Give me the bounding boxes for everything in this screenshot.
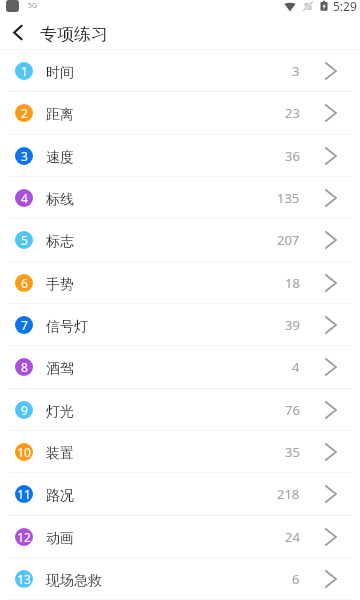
staticText: 6 xyxy=(21,275,28,291)
staticText: 装置 xyxy=(46,445,74,463)
staticText: 2 xyxy=(21,105,28,121)
staticText: 7 xyxy=(21,317,28,333)
staticText: 动画 xyxy=(46,530,74,548)
button[interactable]: Back xyxy=(2,22,32,49)
staticText: 5 xyxy=(21,232,28,248)
staticText: 207 xyxy=(277,231,300,249)
button[interactable]: 12 xyxy=(0,515,360,557)
staticText: 现场急救 xyxy=(46,572,102,590)
staticText: 13 xyxy=(17,571,31,587)
staticText: 35 xyxy=(285,443,300,461)
button[interactable]: 2 xyxy=(0,91,360,133)
staticText: 10 xyxy=(17,444,31,460)
staticText: 速度 xyxy=(46,149,74,167)
button[interactable]: 6 xyxy=(0,261,360,303)
staticText: 5:29 xyxy=(333,0,357,14)
button[interactable]: 8 xyxy=(0,345,360,387)
staticText: 酒驾 xyxy=(46,360,74,378)
staticText: 标志 xyxy=(46,233,74,251)
staticText: 距离 xyxy=(46,106,74,124)
staticText: 8 xyxy=(21,359,28,375)
button[interactable]: 11 xyxy=(0,472,360,514)
button[interactable]: 5 xyxy=(0,218,360,260)
staticText: 信号灯 xyxy=(46,318,88,336)
staticText: 6 xyxy=(292,570,300,588)
staticText: 3 xyxy=(292,62,300,80)
staticText: 时间 xyxy=(46,64,74,82)
staticText: 3 xyxy=(21,148,28,164)
staticText: 标线 xyxy=(46,191,74,209)
staticText: 4 xyxy=(292,358,300,376)
staticText: 灯光 xyxy=(46,403,74,421)
staticText: 18 xyxy=(285,274,300,292)
button[interactable]: 9 xyxy=(0,388,360,430)
staticText: 24 xyxy=(285,528,300,546)
button[interactable]: 1 xyxy=(0,49,360,91)
button[interactable]: 10 xyxy=(0,430,360,472)
staticText: 9 xyxy=(21,402,28,418)
button[interactable]: 13 xyxy=(0,557,360,599)
staticText: 36 xyxy=(285,147,300,165)
staticText: 1 xyxy=(21,63,28,79)
button[interactable]: 4 xyxy=(0,176,360,218)
staticText: 手势 xyxy=(46,276,74,294)
staticText: 5G xyxy=(28,1,38,11)
staticText: 12 xyxy=(17,529,31,545)
staticText: 11 xyxy=(17,486,31,502)
button[interactable]: 3 xyxy=(0,134,360,176)
staticText: 4 xyxy=(21,190,28,206)
staticText: 23 xyxy=(285,104,300,122)
staticText: 135 xyxy=(277,189,300,207)
staticText: 218 xyxy=(277,485,300,503)
button[interactable]: 7 xyxy=(0,303,360,345)
staticText: 专项练习 xyxy=(40,24,108,45)
staticText: 76 xyxy=(285,401,300,419)
staticText: 39 xyxy=(285,316,300,334)
staticText: 路况 xyxy=(46,487,74,505)
